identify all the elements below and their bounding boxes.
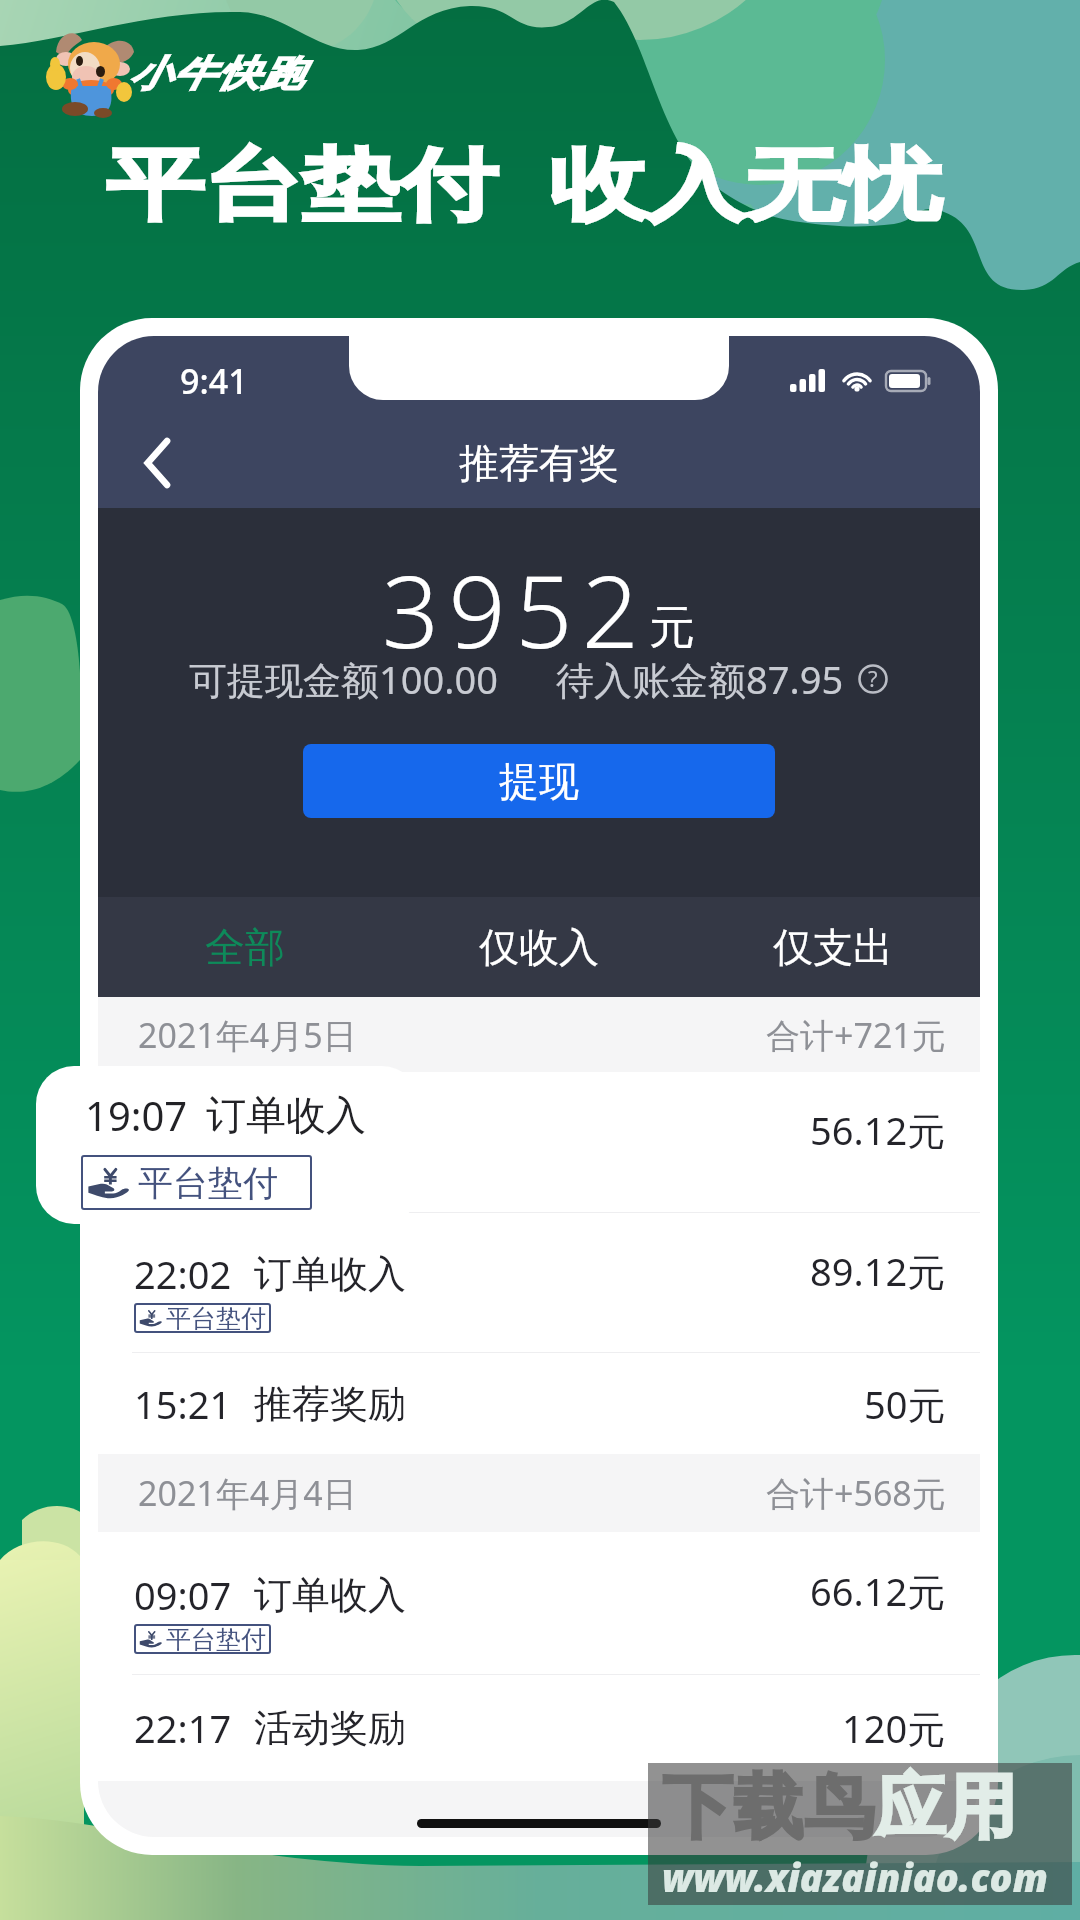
staticText: 平台垫付 [166, 1303, 266, 1333]
button[interactable]: 22:17 [98, 1675, 980, 1781]
staticText: 22:17 [134, 1702, 232, 1754]
button[interactable]: Help [856, 662, 890, 696]
staticText: 9:41 [180, 358, 248, 404]
staticText: 仅支出 [773, 922, 893, 972]
staticText: 全部 [205, 922, 285, 972]
staticText: 待入账金额87.95 [556, 653, 844, 705]
staticText: 仅收入 [479, 922, 599, 972]
staticText: 订单收入 [254, 1110, 406, 1158]
staticText: 推荐有奖 [459, 438, 619, 488]
staticText: 66.12元 [810, 1565, 946, 1617]
staticText: ? [868, 663, 878, 693]
staticText: 应用 [875, 1764, 1017, 1852]
staticText: 50元 [864, 1378, 946, 1430]
button[interactable]: Back [122, 427, 194, 499]
staticText: 平台垫付 [138, 1161, 278, 1205]
staticText: 订单收入 [254, 1250, 406, 1298]
button[interactable]: 22:02 [98, 1213, 980, 1352]
staticText: www.xiazainiao.com [662, 1851, 1048, 1903]
staticText: 订单收入 [206, 1090, 366, 1140]
staticText: 19:07 [134, 1108, 232, 1160]
staticText: 合计+721元 [766, 1012, 946, 1058]
staticText: 2021年4月5日 [138, 1012, 357, 1058]
staticText: 活动奖励 [254, 1704, 406, 1752]
staticText: 推荐奖励 [254, 1380, 406, 1428]
staticText: 56.12元 [810, 1104, 946, 1156]
staticText: 下载鸟 [662, 1764, 875, 1852]
button[interactable]: 提现 [303, 744, 775, 818]
staticText: 09:07 [134, 1569, 232, 1621]
button[interactable]: 19:07 [98, 1072, 980, 1212]
button[interactable]: 全部 [98, 897, 392, 997]
staticText: 可提现金额100.00 [189, 653, 498, 705]
staticText: 15:21 [134, 1378, 232, 1430]
button[interactable]: 仅支出 [686, 897, 980, 997]
staticText: 元 [649, 599, 695, 657]
staticText: 平台垫付 收入无忧 [106, 128, 941, 235]
staticText: 89.12元 [810, 1245, 946, 1297]
staticText: 平台垫付 [166, 1163, 266, 1193]
button[interactable]: 09:07 [98, 1532, 980, 1674]
staticText: 2021年4月4日 [138, 1470, 357, 1516]
staticText: 提现 [499, 756, 579, 806]
staticText: 120元 [842, 1702, 946, 1754]
staticText: 19:07 [85, 1088, 188, 1142]
staticText: 合计+568元 [766, 1470, 946, 1516]
staticText: 小牛快跑 [128, 52, 304, 98]
staticText: 22:02 [134, 1248, 232, 1300]
staticText: 平台垫付 [166, 1624, 266, 1654]
button[interactable]: 15:21 [98, 1353, 980, 1454]
button[interactable]: 仅收入 [392, 897, 686, 997]
staticText: 3952 [382, 541, 649, 677]
staticText: 订单收入 [254, 1571, 406, 1619]
